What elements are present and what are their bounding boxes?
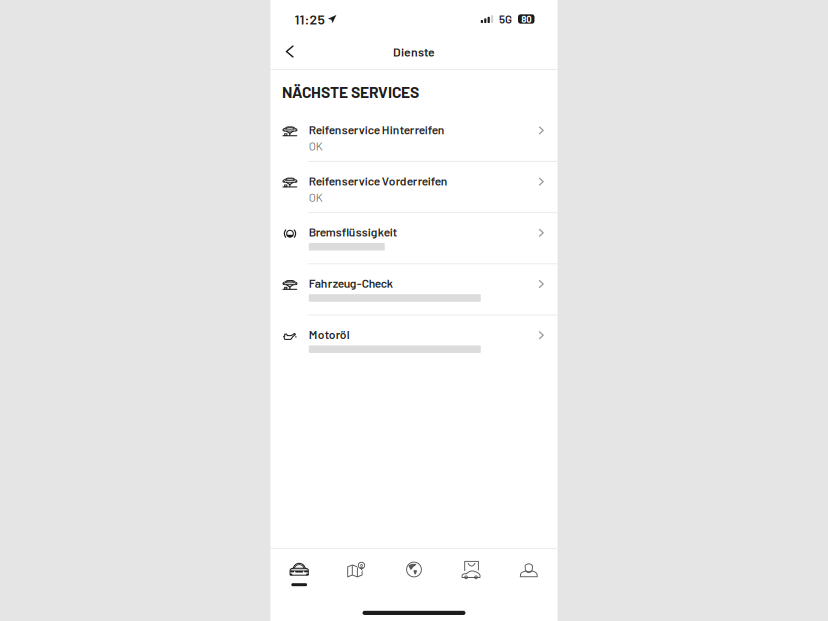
- staticText: OK: [309, 139, 323, 153]
- staticText: 11:25: [294, 11, 324, 27]
- staticText: Reifenservice Hinterreifen: [309, 122, 445, 137]
- staticText: Motoröl: [309, 327, 350, 341]
- button[interactable]: Reifenservice Vorderreifen: [270, 162, 557, 212]
- button[interactable]: Fahrzeug-Check: [270, 264, 557, 314]
- staticText: NÄCHSTE SERVICES: [282, 82, 419, 101]
- button[interactable]: Back: [270, 40, 306, 67]
- button[interactable]: Reifenservice Hinterreifen: [270, 111, 557, 161]
- staticText: Dienste: [393, 44, 435, 59]
- staticText: 5G: [499, 12, 512, 26]
- button[interactable]: Motoröl: [270, 315, 557, 366]
- staticText: Fahrzeug-Check: [309, 276, 393, 290]
- button[interactable]: Vehicle: [270, 549, 328, 593]
- button[interactable]: Map: [328, 549, 385, 593]
- staticText: 80: [521, 13, 531, 25]
- staticText: Reifenservice Vorderreifen: [309, 173, 448, 188]
- staticText: Bremsflüssigkeit: [309, 225, 397, 239]
- staticText: OK: [309, 190, 323, 204]
- button[interactable]: Bremsflüssigkeit: [270, 213, 557, 263]
- button[interactable]: Discover: [385, 549, 443, 593]
- button[interactable]: Shop: [443, 549, 500, 593]
- button[interactable]: Profile: [500, 549, 557, 593]
